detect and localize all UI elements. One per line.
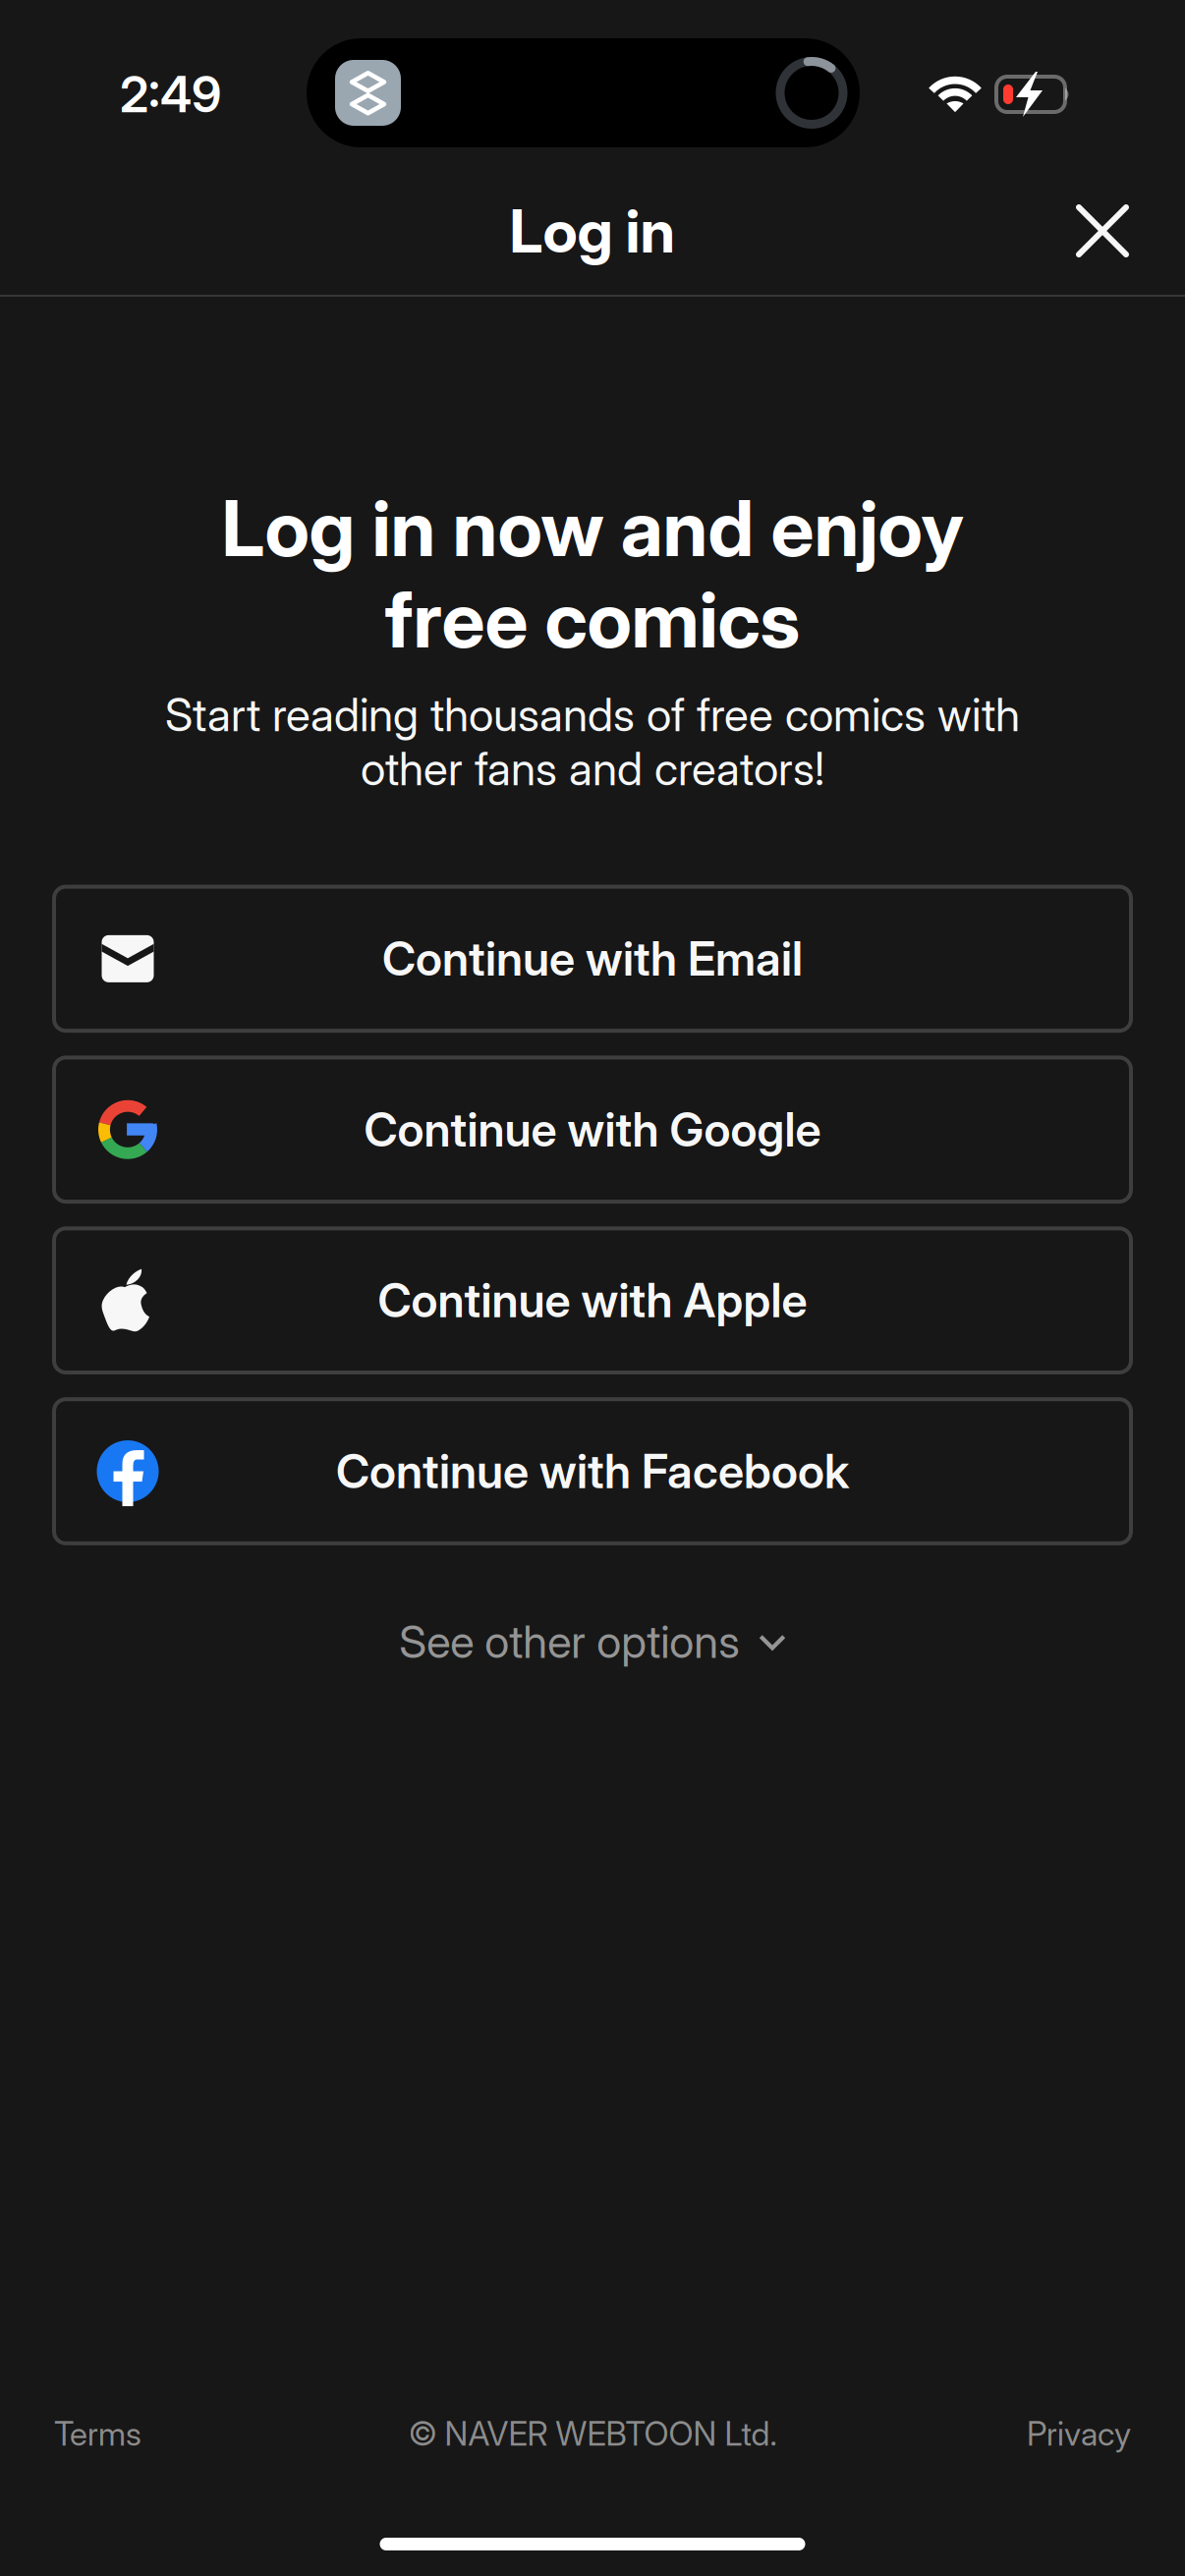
staticText: Continue with Google (364, 1102, 821, 1158)
staticText: other fans and creators! (361, 741, 824, 796)
button[interactable]: See other options (0, 1600, 1185, 1683)
button[interactable]: Continue with Google (54, 1058, 1131, 1202)
staticText: free comics (385, 573, 800, 666)
staticText: See other options (399, 1615, 740, 1669)
staticText: Log in (509, 195, 676, 267)
button[interactable]: Close (1045, 174, 1159, 288)
staticText: 2:49 (120, 65, 221, 124)
staticText: Continue with Facebook (336, 1443, 849, 1499)
staticText: Log in now and enjoy (222, 482, 963, 575)
staticText: Continue with Apple (378, 1272, 807, 1328)
button[interactable]: Terms (54, 2406, 141, 2461)
button[interactable]: Continue with Email (54, 887, 1131, 1031)
button[interactable]: Continue with Facebook (54, 1399, 1131, 1543)
button[interactable]: Privacy (1027, 2406, 1131, 2461)
staticText: Terms (54, 2414, 141, 2453)
button[interactable]: Continue with Apple (54, 1228, 1131, 1372)
staticText: © NAVER WEBTOON Ltd. (408, 2414, 777, 2453)
staticText: Start reading thousands of free comics w… (165, 687, 1020, 742)
staticText: Continue with Email (382, 931, 803, 987)
staticText: Privacy (1027, 2414, 1131, 2453)
